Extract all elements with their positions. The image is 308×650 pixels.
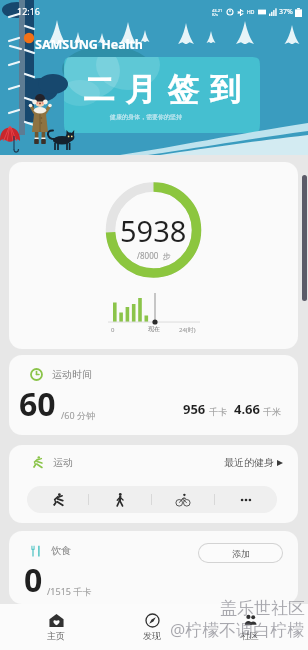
staticText: 12:16 xyxy=(17,5,41,17)
staticText: 24(时) xyxy=(179,326,196,334)
button[interactable]: 饮食 xyxy=(9,531,298,604)
staticText: 37% xyxy=(279,7,293,17)
button[interactable]: 步行 xyxy=(89,486,151,513)
staticText: 5938 xyxy=(120,211,187,250)
button[interactable]: 添加 xyxy=(199,544,282,562)
staticText: 千卡 xyxy=(209,406,227,417)
staticText: 饮食 xyxy=(51,544,71,557)
button[interactable]: 5938 xyxy=(9,162,298,349)
staticText: 956 xyxy=(183,400,206,418)
staticText: @柠檬不调白柠檬 xyxy=(170,618,305,641)
button[interactable]: 最近的健身 xyxy=(224,456,283,469)
button[interactable]: 运动时间 xyxy=(9,355,298,435)
staticText: 0 xyxy=(24,558,43,602)
staticText: 43.21 K/s xyxy=(212,8,223,17)
staticText: 运动时间 xyxy=(52,368,92,381)
staticText: 运动 xyxy=(53,456,73,469)
staticText: 添加 xyxy=(232,548,250,559)
staticText: 现在 xyxy=(148,325,160,333)
staticText: SAMSUNG Health xyxy=(35,36,143,53)
button[interactable]: 社区 xyxy=(192,604,308,650)
staticText: 最近的健身 xyxy=(224,456,274,469)
staticText: 4.66 xyxy=(234,400,260,418)
staticText: 二月签到 xyxy=(78,70,246,109)
staticText: 社区 xyxy=(241,630,259,641)
button[interactable]: 骑行 xyxy=(152,486,214,513)
staticText: /8000 步 xyxy=(137,250,171,261)
staticText: /1515 千卡 xyxy=(47,585,92,597)
button[interactable]: 主页 xyxy=(0,604,112,650)
staticText: 健康的身体，需要你的坚持 xyxy=(110,113,182,121)
staticText: 主页 xyxy=(47,630,65,641)
staticText: 盖乐世社区 xyxy=(220,598,305,619)
staticText: 发现 xyxy=(143,630,161,641)
button[interactable]: 发现 xyxy=(112,604,192,650)
staticText: /60 分钟 xyxy=(61,409,95,421)
staticText: 60 xyxy=(19,382,56,426)
button[interactable]: 更多 xyxy=(215,486,277,513)
staticText: 0 xyxy=(111,326,115,334)
button[interactable]: 跑步 xyxy=(27,486,88,513)
staticText: 千米 xyxy=(263,406,281,417)
staticText: HD xyxy=(247,9,255,16)
